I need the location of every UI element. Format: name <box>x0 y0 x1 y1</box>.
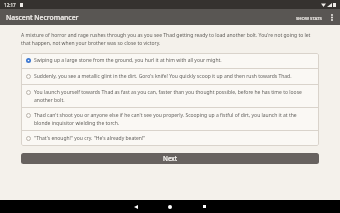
button[interactable]: Thad can't shoot you or anyone else if h… <box>21 108 319 130</box>
button[interactable]: Recent apps <box>194 200 214 213</box>
button[interactable]: You launch yourself towards Thad as fast… <box>21 85 319 107</box>
button[interactable]: More options <box>325 11 338 24</box>
button[interactable]: Home <box>160 200 180 213</box>
staticText: You launch yourself towards Thad as fast… <box>34 89 313 103</box>
staticText: Swiping up a large stone from the ground… <box>34 57 222 64</box>
button[interactable]: Back <box>126 200 146 213</box>
button[interactable]: Suddenly, you see a metallic glint in th… <box>21 69 319 84</box>
staticText: "That's enough!" you cry. "He's already … <box>34 135 146 142</box>
staticText: Next <box>163 154 178 163</box>
staticText: 12:17 <box>4 2 16 8</box>
staticText: A mixture of horror and rage rushes thro… <box>21 32 319 46</box>
button[interactable]: "That's enough!" you cry. "He's already … <box>21 131 319 146</box>
staticText: Nascent Necromancer <box>6 13 79 22</box>
staticText: SHOW STATS <box>296 15 322 21</box>
button[interactable]: Next <box>21 153 319 164</box>
staticText: Suddenly, you see a metallic glint in th… <box>34 73 292 80</box>
staticText: Thad can't shoot you or anyone else if h… <box>34 112 313 126</box>
button[interactable]: SHOW STATS <box>293 12 325 24</box>
button[interactable]: Swiping up a large stone from the ground… <box>21 53 319 68</box>
